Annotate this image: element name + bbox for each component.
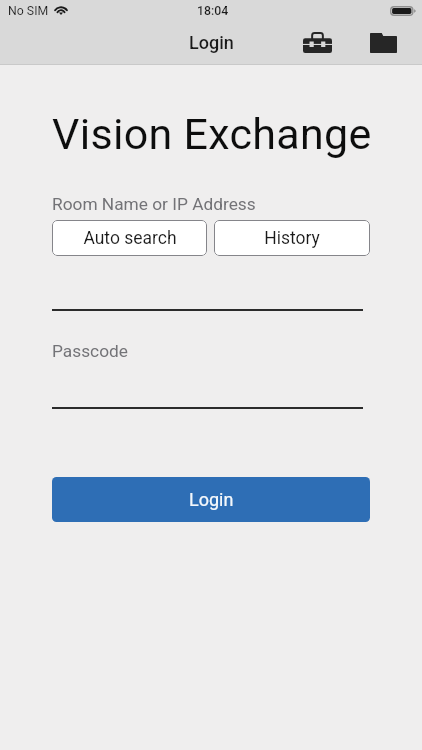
button[interactable]: Login [52, 477, 370, 522]
staticText: Room Name or IP Address [52, 194, 256, 214]
staticText: No SIM [8, 4, 49, 18]
button[interactable]: Auto search [52, 220, 207, 256]
staticText: History [264, 228, 320, 249]
staticText: 18:04 [197, 4, 229, 18]
staticText: Login [189, 32, 234, 53]
button[interactable]: History [214, 220, 370, 256]
staticText: Login [189, 489, 234, 510]
button[interactable]: Files [364, 23, 403, 62]
staticText: Auto search [83, 228, 177, 249]
button[interactable]: Tools [298, 23, 337, 62]
staticText: Vision Exchange [52, 109, 370, 159]
staticText: Passcode [52, 341, 128, 361]
